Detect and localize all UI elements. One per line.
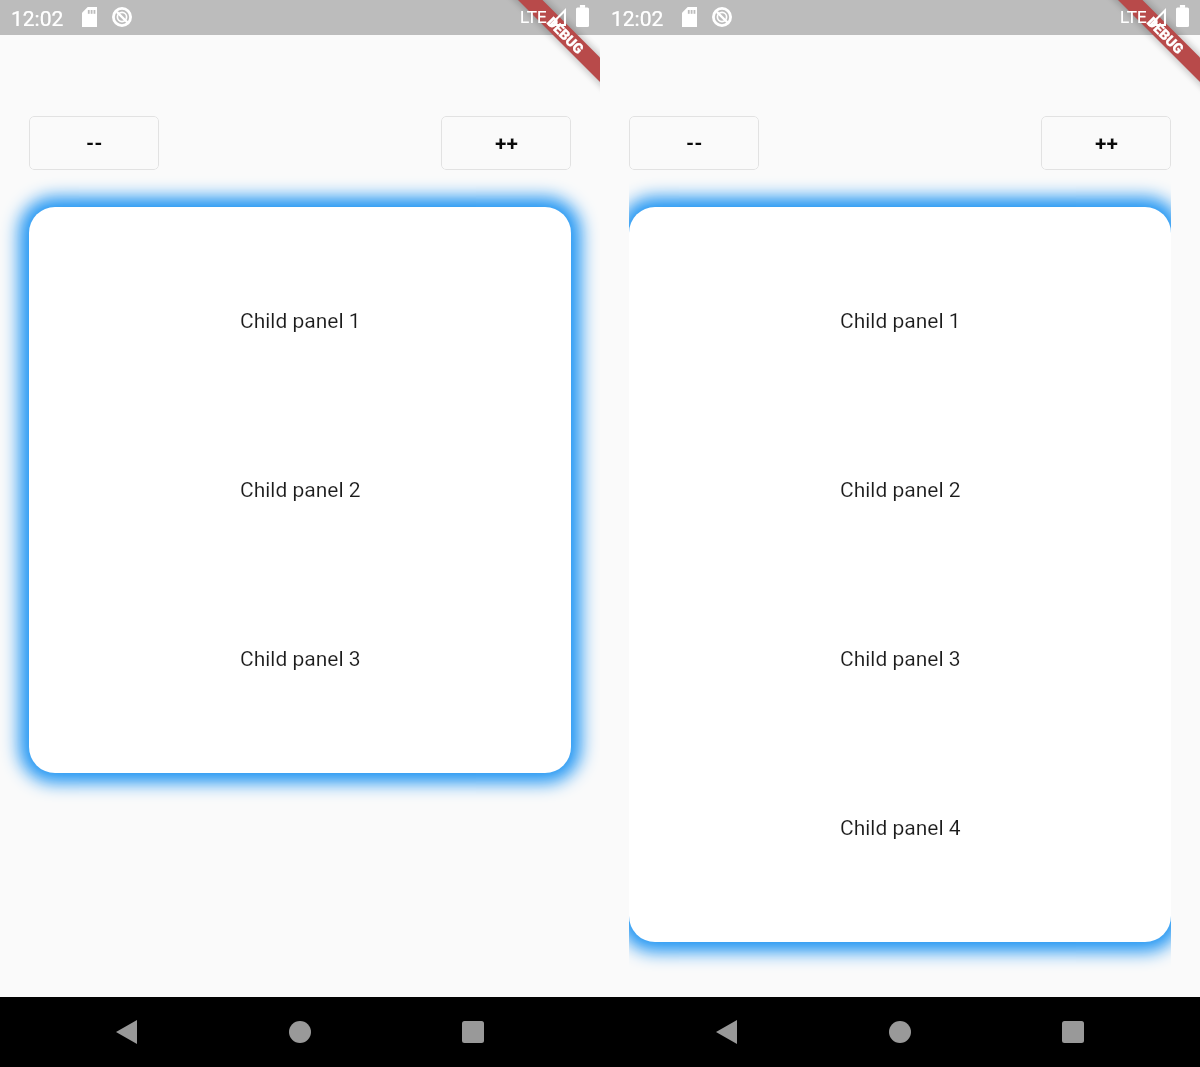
- staticText: Child panel 1: [240, 309, 361, 334]
- button[interactable]: Child panel 1: [29, 237, 571, 406]
- button[interactable]: Home: [250, 997, 350, 1067]
- staticText: LTE: [1120, 7, 1147, 27]
- staticText: Child panel 1: [840, 309, 961, 334]
- button[interactable]: Back: [676, 997, 776, 1067]
- button[interactable]: Child panel 2: [629, 406, 1171, 575]
- staticText: --: [686, 131, 703, 156]
- button[interactable]: --: [29, 116, 159, 170]
- button[interactable]: Child panel 3: [29, 575, 571, 744]
- staticText: DEBUG: [1144, 14, 1187, 57]
- button[interactable]: Child panel 3: [629, 575, 1171, 744]
- staticText: ++: [1095, 131, 1118, 156]
- staticText: 12:02: [11, 7, 64, 32]
- button[interactable]: Child panel 4: [629, 744, 1171, 913]
- staticText: Child panel 3: [840, 647, 961, 672]
- button[interactable]: --: [629, 116, 759, 170]
- staticText: LTE: [520, 7, 547, 27]
- button[interactable]: Child panel 2: [29, 406, 571, 575]
- staticText: Child panel 3: [240, 647, 361, 672]
- staticText: Child panel 4: [840, 816, 961, 841]
- staticText: Child panel 2: [240, 478, 361, 503]
- staticText: DEBUG: [544, 14, 587, 57]
- staticText: ++: [495, 131, 518, 156]
- staticText: --: [86, 131, 103, 156]
- button[interactable]: Child panel 1: [629, 237, 1171, 406]
- button[interactable]: Recent apps: [1023, 997, 1123, 1067]
- button[interactable]: Home: [850, 997, 950, 1067]
- button[interactable]: ++: [1041, 116, 1171, 170]
- button[interactable]: Recent apps: [423, 997, 523, 1067]
- button[interactable]: Back: [76, 997, 176, 1067]
- staticText: 12:02: [611, 7, 664, 32]
- staticText: Child panel 2: [840, 478, 961, 503]
- button[interactable]: ++: [441, 116, 571, 170]
